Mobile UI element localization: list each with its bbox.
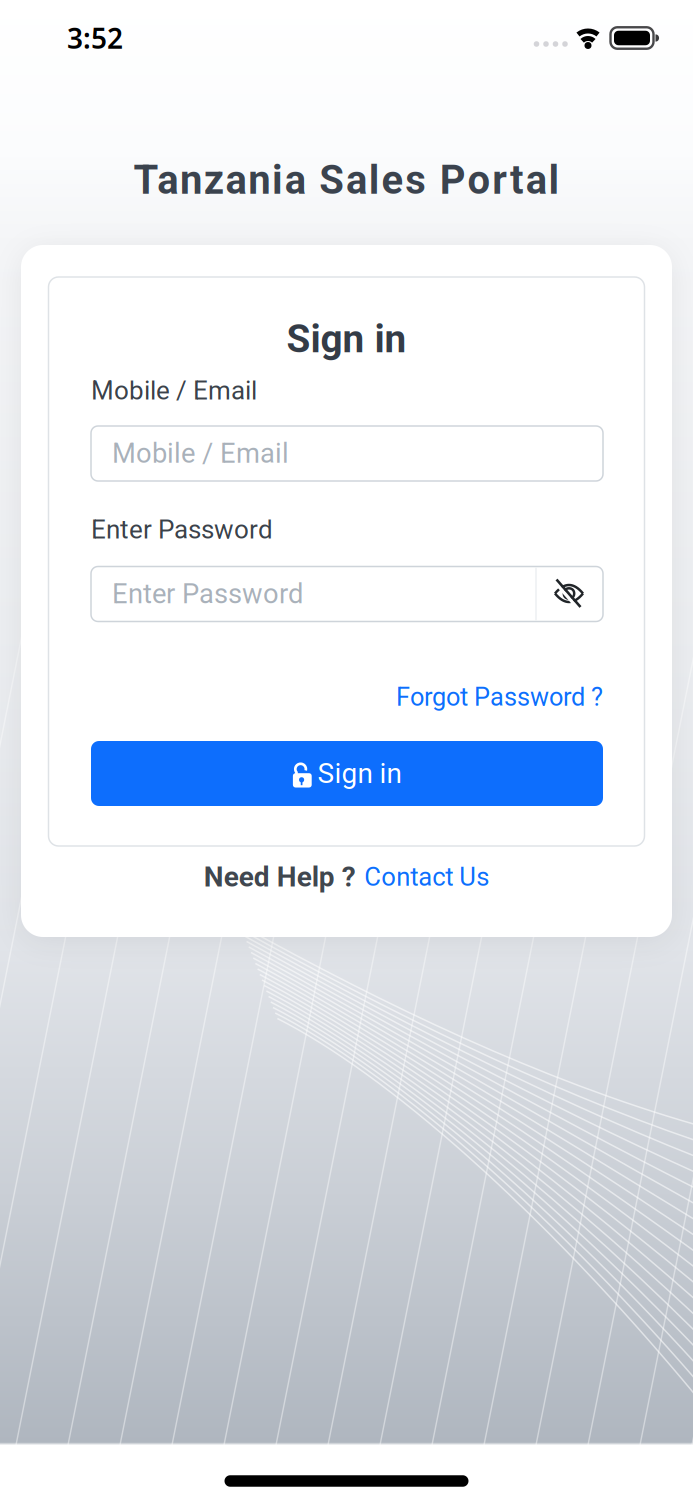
- staticText: 3:52: [67, 19, 123, 57]
- button[interactable]: Mobile / Email: [91, 426, 603, 481]
- button[interactable]: Show password: [536, 566, 603, 621]
- button[interactable]: Contact Us: [364, 862, 489, 892]
- staticText: Sign in: [317, 757, 401, 790]
- button[interactable]: Sign in: [91, 741, 603, 806]
- staticText: Enter Password: [91, 514, 273, 545]
- staticText: Sign in: [286, 316, 406, 362]
- button[interactable]: Enter Password: [91, 566, 536, 621]
- staticText: Need Help ?: [204, 861, 356, 893]
- staticText: Mobile / Email: [91, 375, 257, 406]
- staticText: Mobile / Email: [112, 437, 289, 469]
- staticText: Forgot Password ?: [396, 682, 603, 712]
- staticText: Enter Password: [112, 578, 303, 610]
- staticText: Tanzania Sales Portal: [133, 157, 559, 203]
- staticText: Contact Us: [364, 862, 489, 892]
- button[interactable]: Forgot Password ?: [396, 682, 603, 712]
